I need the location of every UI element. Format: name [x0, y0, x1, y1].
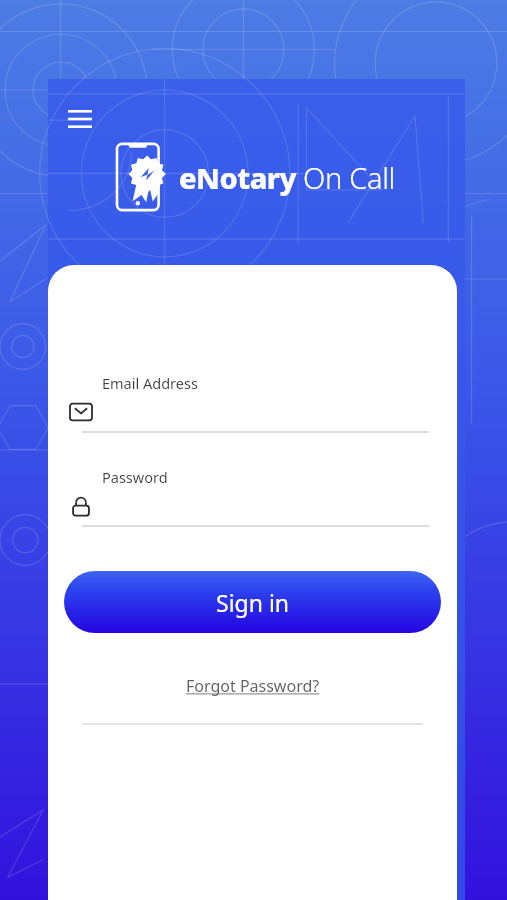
- button[interactable]: Forgot Password?: [178, 671, 328, 701]
- button[interactable]: Open navigation menu: [58, 97, 102, 141]
- button[interactable]: Sign in: [64, 571, 441, 633]
- button[interactable]: [48, 495, 457, 517]
- staticText: Email Address: [102, 373, 198, 393]
- staticText: Password: [102, 467, 168, 487]
- staticText: eNotary: [179, 158, 297, 197]
- staticText: On Call: [303, 158, 396, 197]
- button[interactable]: [48, 401, 457, 423]
- staticText: Sign in: [216, 587, 290, 618]
- staticText: Forgot Password?: [186, 675, 320, 697]
